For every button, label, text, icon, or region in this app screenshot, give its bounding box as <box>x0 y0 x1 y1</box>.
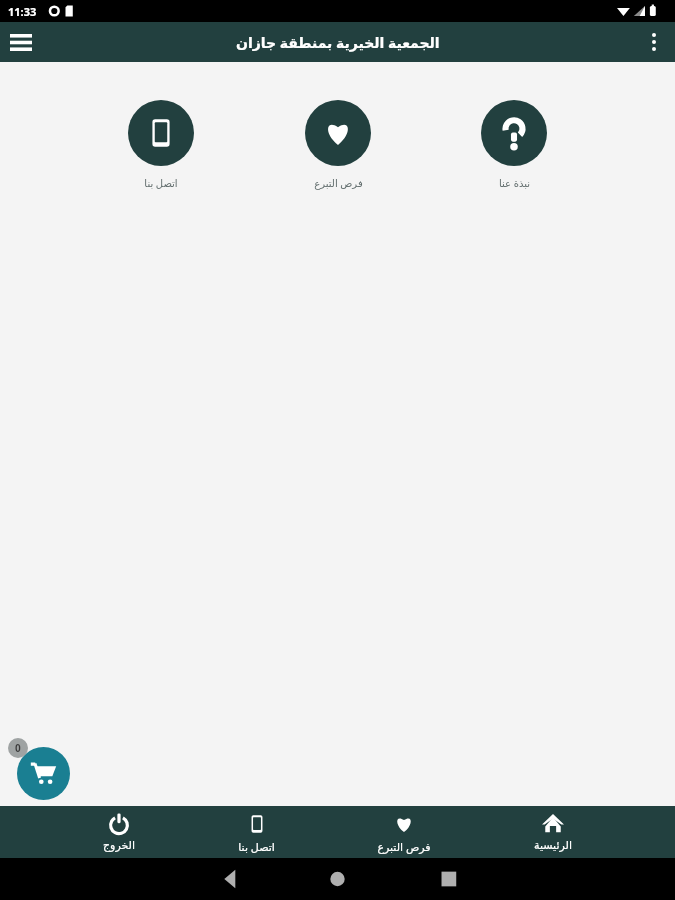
button[interactable]: الخروج <box>103 806 135 852</box>
button[interactable]: الرئيسية <box>534 806 572 852</box>
staticText: نبذة عنا <box>499 176 530 190</box>
button[interactable]: More options <box>633 22 675 62</box>
staticText: الرئيسية <box>534 839 572 852</box>
button[interactable]: اتصل بنا <box>128 100 194 190</box>
staticText: فرص التبرع <box>377 839 431 854</box>
staticText: الجمعية الخيرية بمنطقة جازان <box>236 33 440 52</box>
button[interactable]: اتصل بنا <box>238 806 275 854</box>
button[interactable]: Cart <box>17 747 70 800</box>
button[interactable]: فرص التبرع <box>305 100 371 190</box>
staticText: 0 <box>15 741 21 755</box>
staticText: اتصل بنا <box>238 839 275 854</box>
staticText: الخروج <box>103 839 135 852</box>
button[interactable]: Menu <box>0 22 42 62</box>
staticText: 11:33 <box>8 4 37 19</box>
button[interactable]: فرص التبرع <box>377 806 431 854</box>
staticText: فرص التبرع <box>314 176 363 190</box>
staticText: اتصل بنا <box>144 176 178 190</box>
button[interactable]: نبذة عنا <box>481 100 547 190</box>
